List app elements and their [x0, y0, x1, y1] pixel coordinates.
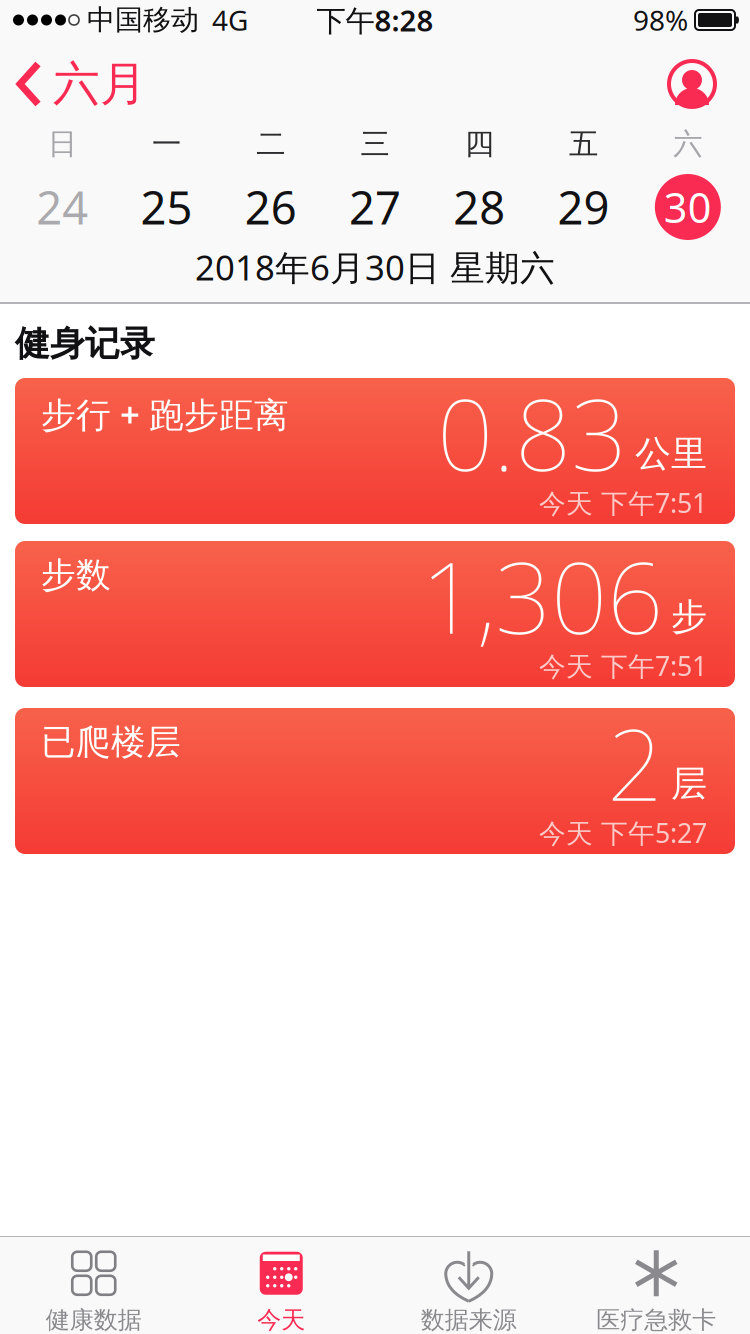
staticText: 步数 — [41, 554, 111, 597]
staticText: 层 — [671, 762, 707, 806]
staticText: 步行 + 跑步距离 — [41, 391, 289, 437]
staticText: 健康数据 — [46, 1305, 142, 1334]
staticText: 2018年6月30日 星期六 — [195, 244, 555, 290]
staticText: 一 — [152, 126, 181, 162]
button[interactable]: 六月 — [0, 55, 147, 113]
staticText: 下午8:28 — [316, 0, 433, 39]
button[interactable]: 28 — [427, 177, 531, 237]
button[interactable]: 25 — [114, 177, 219, 237]
staticText: 已爬楼层 — [41, 721, 181, 764]
staticText: 医疗急救卡 — [596, 1305, 716, 1334]
staticText: 日 — [48, 126, 77, 162]
button[interactable]: 健康数据 — [0, 1236, 187, 1334]
staticText: 2 — [607, 697, 663, 828]
staticText: 六月 — [53, 55, 147, 113]
staticText: 29 — [558, 177, 610, 237]
button[interactable]: 已爬楼层 — [0, 708, 750, 854]
staticText: 二 — [256, 126, 285, 162]
button[interactable] — [667, 59, 750, 109]
staticText: 健身记录 — [15, 322, 155, 365]
staticText: 1,306 — [421, 530, 663, 661]
button[interactable]: 26 — [219, 177, 323, 237]
button[interactable]: 步数 — [0, 541, 750, 687]
button[interactable]: 24 — [10, 177, 114, 237]
button[interactable]: 今天 — [187, 1236, 375, 1334]
staticText: 步 — [671, 595, 707, 639]
staticText: 六 — [673, 126, 702, 162]
staticText: 28 — [453, 177, 505, 237]
button[interactable]: 27 — [323, 177, 427, 237]
staticText: 今天 — [257, 1305, 305, 1334]
staticText: 今天 下午5:27 — [539, 815, 707, 850]
staticText: 今天 下午7:51 — [539, 648, 707, 683]
staticText: 今天 下午7:51 — [539, 485, 707, 520]
staticText: 30 — [664, 180, 712, 234]
staticText: 中国移动 — [87, 3, 199, 37]
staticText: 25 — [140, 177, 192, 237]
staticText: 三 — [360, 126, 389, 162]
staticText: 公里 — [635, 432, 707, 476]
button[interactable]: 数据来源 — [375, 1236, 562, 1334]
staticText: 0.83 — [437, 367, 627, 498]
staticText: 4G — [212, 1, 248, 39]
button[interactable]: 30 — [636, 174, 740, 240]
staticText: 24 — [36, 177, 88, 237]
staticText: 五 — [569, 126, 598, 162]
staticText: 数据来源 — [421, 1305, 517, 1334]
staticText: 27 — [349, 177, 401, 237]
button[interactable]: 29 — [531, 177, 636, 237]
button[interactable]: 医疗急救卡 — [562, 1236, 750, 1334]
staticText: 98% — [633, 1, 688, 39]
staticText: 26 — [245, 177, 297, 237]
staticText: 四 — [465, 126, 494, 162]
button[interactable]: 步行 + 跑步距离 — [0, 378, 750, 524]
